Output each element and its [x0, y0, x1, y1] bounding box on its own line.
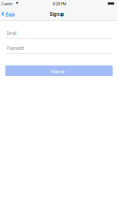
staticText: Email — [7, 31, 17, 36]
staticText: Sign up — [51, 69, 64, 74]
staticText: Carrier — [1, 1, 12, 6]
staticText: 8:28 PM — [53, 1, 66, 6]
staticText: Password — [7, 46, 24, 51]
staticText: Sign up — [50, 12, 65, 17]
button[interactable]: Back — [0, 7, 14, 21]
button[interactable]: Sign up — [5, 65, 113, 76]
staticText: Back — [5, 12, 14, 18]
